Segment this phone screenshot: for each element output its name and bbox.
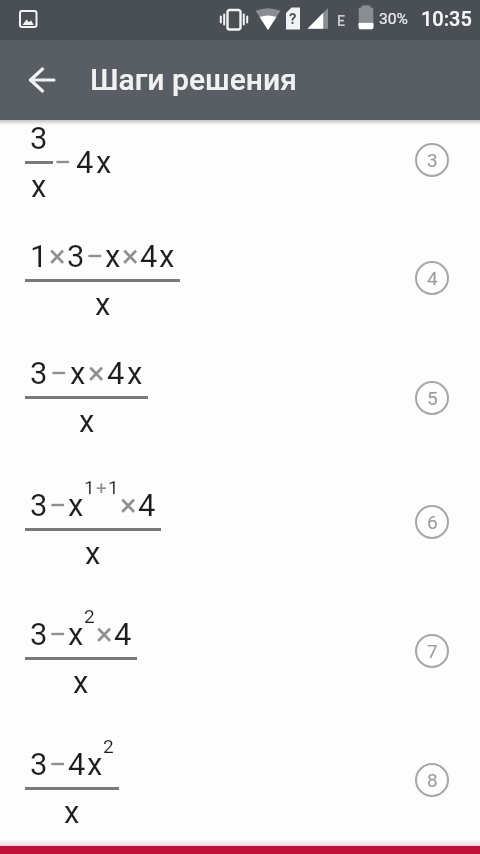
staticText: 3 [30,746,48,782]
staticText: × [96,616,113,652]
staticText: ? [289,10,297,28]
button[interactable]: 3 [25,120,112,204]
staticText: 4 [138,487,156,523]
staticText: Шаги решения [90,62,297,97]
staticText: 4 [76,144,94,180]
staticText: x [73,664,89,700]
staticText: x [127,355,143,391]
staticText: 4 [114,616,132,652]
staticText: 3 [67,238,85,274]
staticText: × [120,487,137,523]
staticText: x [95,286,111,322]
staticText: 3 [427,149,438,171]
staticText: × [88,355,105,391]
staticText: x [96,144,112,180]
staticText: 3 [30,355,48,391]
staticText: 4 [68,746,86,782]
staticText: x [159,238,175,274]
staticText: 2 [103,735,114,757]
staticText: + [96,476,107,498]
staticText: 4 [107,355,125,391]
staticText: 1 [30,238,48,274]
staticText: − [50,355,68,391]
staticText: 4 [140,238,158,274]
staticText: 8 [427,769,438,791]
staticText: x [68,616,84,652]
staticText: 3 [30,120,48,156]
button[interactable]: 4 [415,261,449,295]
staticText: 10:35 [421,7,472,30]
staticText: 3 [30,616,48,652]
staticText: 1 [84,476,95,498]
staticText: x [64,794,80,830]
button[interactable]: 3 [25,746,119,830]
button[interactable]: 3 [415,143,449,177]
button[interactable]: 7 [415,634,449,668]
staticText: 3 [30,487,48,523]
staticText: − [54,144,72,180]
button[interactable]: 3 [25,616,137,700]
staticText: x [79,403,95,439]
button[interactable]: 3 [25,355,148,439]
button[interactable]: 3 [25,487,161,571]
staticText: x [70,355,86,391]
staticText: 4 [427,267,438,289]
button[interactable] [18,56,66,104]
staticText: × [49,238,66,274]
staticText: x [85,535,101,571]
staticText: 1 [108,476,119,498]
button[interactable]: 8 [415,763,449,797]
staticText: − [86,238,104,274]
staticText: x [68,487,84,523]
staticText: 2 [84,605,95,627]
staticText: 7 [427,640,438,662]
staticText: x [87,746,103,782]
button[interactable]: 1 [25,238,180,322]
button[interactable]: 6 [415,505,449,539]
staticText: × [122,238,139,274]
staticText: − [49,487,67,523]
staticText: x [31,168,47,204]
button[interactable]: 5 [415,381,449,415]
staticText: − [49,746,67,782]
staticText: 30% [379,10,408,28]
staticText: x [105,238,121,274]
staticText: 6 [427,511,438,533]
staticText: E [337,13,345,29]
staticText: − [49,616,67,652]
staticText: 5 [427,387,438,409]
